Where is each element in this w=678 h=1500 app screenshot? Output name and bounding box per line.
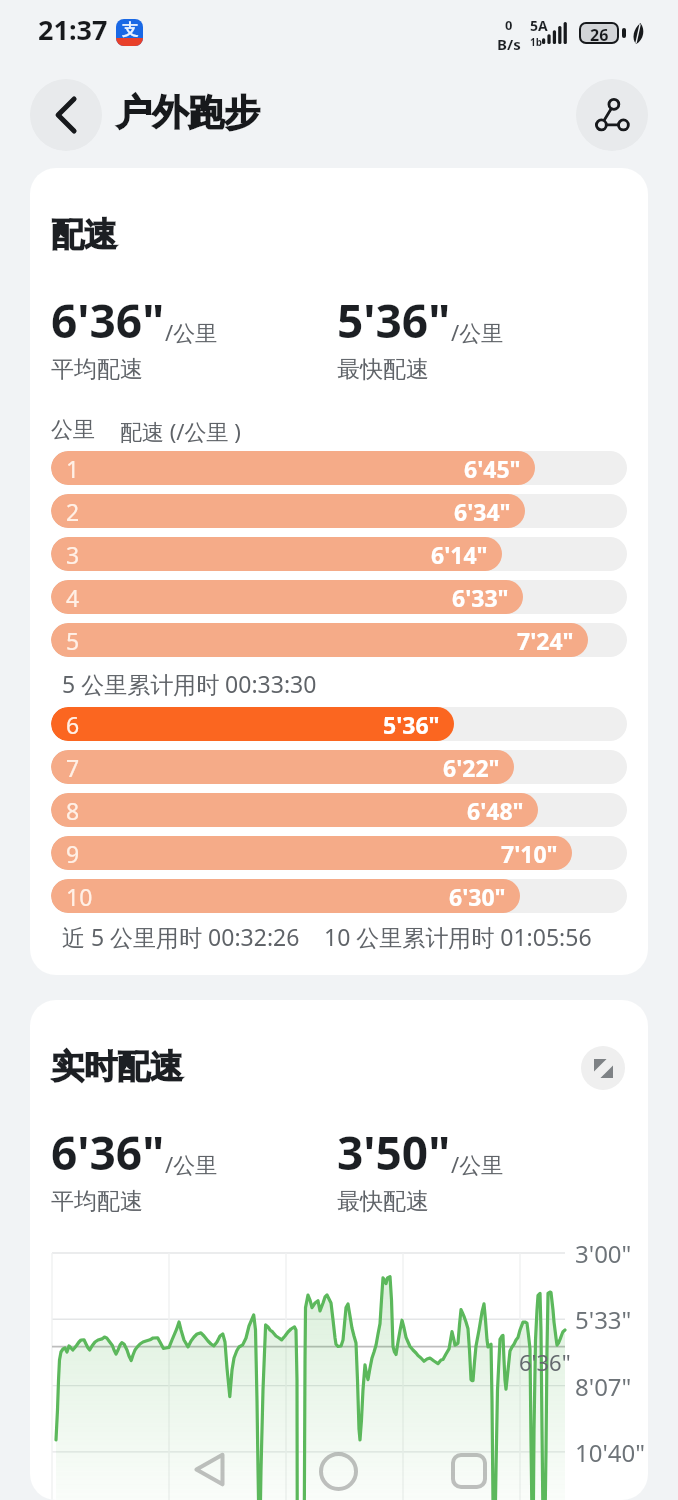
- staticText: 10 公里累计用时 01:05:56: [324, 921, 592, 952]
- staticText: 10'40": [575, 1436, 646, 1469]
- staticText: 2: [66, 496, 80, 527]
- staticText: 4: [66, 582, 80, 613]
- button[interactable]: Back: [174, 1434, 244, 1500]
- staticText: 26: [590, 24, 609, 42]
- staticText: 配速 (/公里 ): [120, 416, 241, 446]
- staticText: 21:37: [38, 11, 108, 48]
- button[interactable]: 4: [51, 580, 627, 614]
- staticText: 最快配速: [337, 355, 429, 384]
- staticText: 3'50": [337, 1121, 451, 1184]
- staticText: 6'36": [51, 289, 165, 352]
- staticText: 6'45": [464, 453, 521, 484]
- staticText: 6'14": [431, 539, 488, 570]
- staticText: 5'36": [383, 709, 440, 740]
- staticText: 5A: [530, 16, 548, 35]
- staticText: B/s: [497, 34, 521, 54]
- staticText: 1: [66, 453, 80, 484]
- staticText: 配速: [51, 214, 117, 256]
- staticText: 6'48": [467, 795, 524, 826]
- staticText: 6'22": [443, 752, 500, 783]
- staticText: 6'36": [519, 1347, 571, 1377]
- staticText: 平均配速: [51, 355, 143, 384]
- button[interactable]: 1: [51, 451, 627, 485]
- staticText: 5'33": [575, 1303, 632, 1336]
- button[interactable]: 8: [51, 793, 627, 827]
- staticText: 户外跑步: [116, 90, 260, 135]
- staticText: 8'07": [575, 1370, 632, 1403]
- staticText: 7'24": [517, 625, 574, 656]
- button[interactable]: Home: [303, 1436, 373, 1500]
- button[interactable]: 5: [51, 623, 627, 657]
- staticText: 8: [66, 795, 80, 826]
- staticText: 5'36": [337, 289, 451, 352]
- staticText: 6'36": [51, 1121, 165, 1184]
- staticText: 近 5 公里用时 00:32:26: [62, 921, 300, 952]
- button[interactable]: Back: [30, 79, 102, 151]
- staticText: 6'33": [452, 582, 509, 613]
- staticText: /公里: [165, 317, 218, 347]
- staticText: 6'34": [454, 496, 511, 527]
- button[interactable]: Recents: [434, 1436, 504, 1500]
- staticText: 最快配速: [337, 1187, 429, 1216]
- button[interactable]: Share: [576, 79, 648, 151]
- staticText: /公里: [451, 317, 504, 347]
- button[interactable]: 3: [51, 537, 627, 571]
- staticText: 5 公里累计用时 00:33:30: [62, 668, 317, 699]
- staticText: /公里: [165, 1149, 218, 1179]
- staticText: 5: [66, 625, 80, 656]
- staticText: 3: [66, 539, 80, 570]
- staticText: 1b: [530, 35, 543, 49]
- button[interactable]: 7: [51, 750, 627, 784]
- staticText: 10: [66, 881, 93, 912]
- button[interactable]: 10: [51, 879, 627, 913]
- staticText: 公里: [51, 416, 95, 444]
- staticText: 0: [505, 16, 513, 34]
- staticText: 3'00": [575, 1237, 632, 1270]
- staticText: 7'10": [501, 838, 558, 869]
- staticText: 支: [122, 20, 138, 40]
- button[interactable]: 2: [51, 494, 627, 528]
- staticText: 7: [66, 752, 80, 783]
- button[interactable]: 9: [51, 836, 627, 870]
- staticText: 实时配速: [51, 1046, 183, 1088]
- staticText: 平均配速: [51, 1187, 143, 1216]
- button[interactable]: 6: [51, 707, 627, 741]
- staticText: /公里: [451, 1149, 504, 1179]
- staticText: 9: [66, 838, 80, 869]
- staticText: 6: [66, 709, 80, 740]
- button[interactable]: Expand: [581, 1046, 625, 1090]
- staticText: 6'30": [449, 881, 506, 912]
